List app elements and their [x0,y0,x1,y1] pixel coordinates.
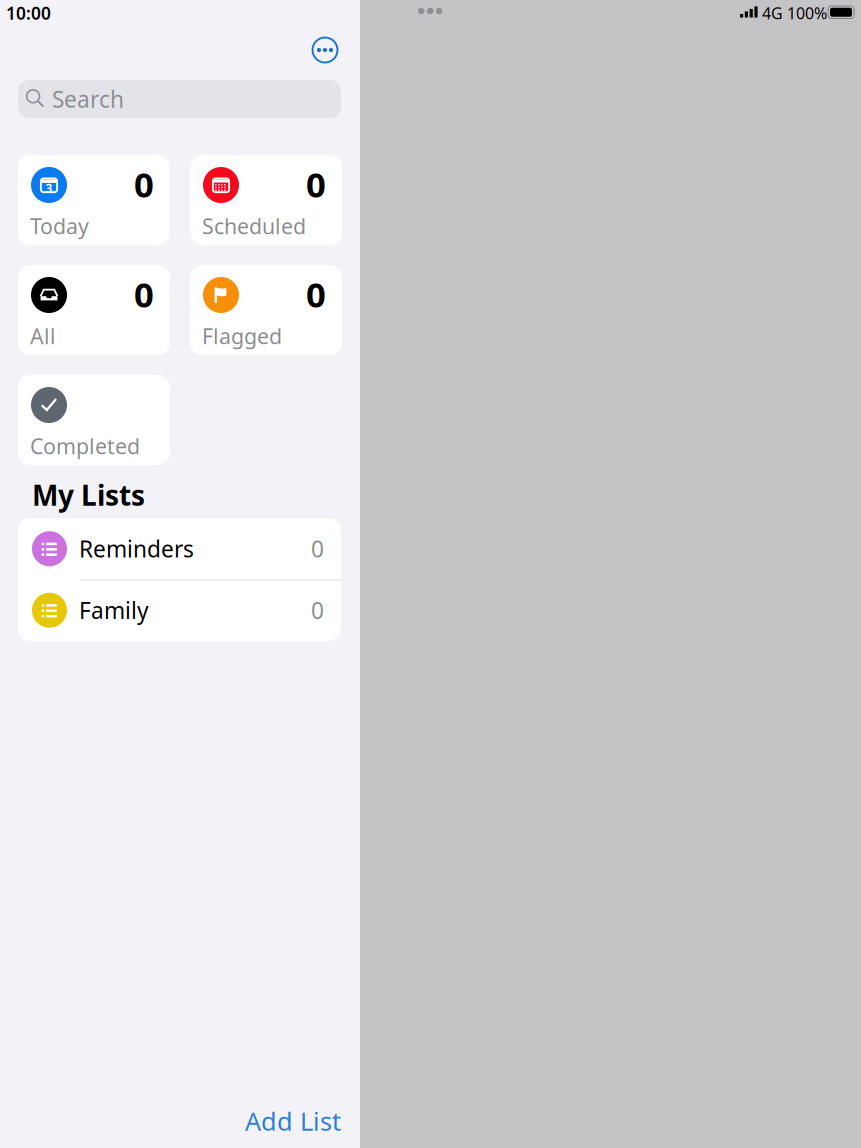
button[interactable]: 0 [190,155,342,245]
button[interactable]: Reminders [18,518,341,579]
button[interactable]: More options [299,24,351,76]
button[interactable]: Add List [240,1101,341,1141]
button[interactable]: 3 [18,155,170,245]
staticText: Add List [245,1104,341,1138]
staticText: 0 [306,161,326,207]
staticText: Scheduled [202,212,306,240]
staticText: 0 [306,271,326,317]
staticText: Search [52,84,124,114]
staticText: All [30,322,56,350]
staticText: 100% [787,2,827,24]
button[interactable] [18,375,170,465]
staticText: 3 [45,180,52,196]
staticText: Reminders [79,534,194,564]
button[interactable]: Family [18,579,341,641]
button[interactable]: Search [18,80,341,118]
button[interactable]: 0 [190,265,342,355]
staticText: 0 [134,271,154,317]
staticText: Family [79,595,149,625]
staticText: 4G [762,2,783,24]
button[interactable]: 0 [18,265,170,355]
staticText: Flagged [202,322,282,350]
staticText: 0 [311,534,324,564]
staticText: 0 [311,595,324,625]
staticText: Today [30,212,89,240]
staticText: My Lists [32,476,145,514]
staticText: Completed [30,432,140,460]
staticText: 10:00 [6,1,51,24]
staticText: 0 [134,161,154,207]
